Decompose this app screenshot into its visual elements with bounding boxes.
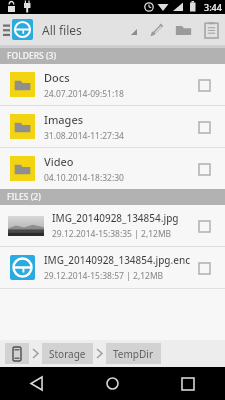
button[interactable]: Images [0, 106, 225, 147]
staticText: IMG_20140928_134854.jpg.enc [44, 253, 191, 267]
button[interactable]: Device root [5, 343, 29, 364]
staticText: 29.12.2014-15:38:57 | 2,12MB [44, 270, 164, 282]
staticText: 04.10.2014-18:32:30 [44, 172, 124, 184]
button[interactable]: Home [75, 367, 150, 400]
button[interactable]: Video [0, 148, 225, 189]
staticText: FOLDERS (3) [7, 50, 57, 62]
button[interactable]: Select item [193, 158, 215, 180]
button[interactable]: Select item [193, 257, 215, 279]
button[interactable]: IMG_20140928_134854.jpg [0, 205, 225, 246]
staticText: Video [44, 154, 74, 169]
staticText: 29.12.2014-15:38:35 | 2,12MB [52, 228, 172, 240]
button[interactable]: Open navigation drawer [0, 14, 33, 45]
button[interactable]: Select item [193, 215, 215, 237]
button[interactable]: Edit [143, 14, 169, 45]
staticText: Storage [49, 347, 86, 361]
staticText: All files [42, 22, 82, 38]
staticText: 24.07.2014-09:51:18 [44, 88, 124, 100]
staticText: Docs [44, 70, 70, 85]
button[interactable]: Select item [193, 74, 215, 96]
button[interactable]: TempDir [106, 343, 161, 364]
button[interactable]: IMG_20140928_134854.jpg.enc [0, 247, 225, 288]
button[interactable]: Clipboard [197, 14, 225, 45]
button[interactable]: New folder [169, 14, 197, 45]
staticText: Images [44, 112, 84, 127]
button[interactable]: All files [42, 14, 143, 45]
button[interactable]: Recent apps [150, 367, 225, 400]
staticText: 31.08.2014-11:27:34 [44, 130, 124, 142]
staticText: TempDir [113, 347, 154, 361]
staticText: FILES (2) [7, 191, 41, 203]
button[interactable]: Back [0, 367, 75, 400]
button[interactable]: Storage [42, 343, 93, 364]
staticText: IMG_20140928_134854.jpg [52, 211, 179, 225]
staticText: 3:44 [204, 1, 222, 13]
button[interactable]: Select item [193, 116, 215, 138]
button[interactable]: Docs [0, 64, 225, 105]
